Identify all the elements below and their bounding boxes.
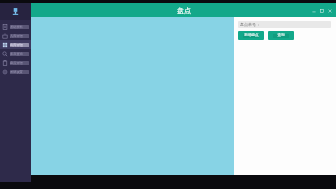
button[interactable]: Menu icon	[0, 31, 31, 40]
staticText: 入库管理	[10, 34, 23, 38]
other: Menu icon	[2, 24, 8, 30]
staticText: 盘点	[177, 6, 191, 15]
staticText: 查询	[277, 33, 285, 38]
other: Menu icon	[2, 42, 8, 48]
button[interactable]: 查询	[268, 31, 294, 40]
button[interactable]: Maximize	[319, 8, 324, 13]
other: Menu icon	[2, 60, 8, 66]
button[interactable]: Minimize	[311, 8, 316, 13]
staticText: 库存查询	[10, 52, 23, 56]
button[interactable]: Menu icon	[0, 58, 31, 67]
button[interactable]: App logo	[0, 3, 31, 20]
button[interactable]: 盘点单号：	[238, 21, 331, 28]
button[interactable]: Menu icon	[0, 40, 31, 49]
staticText: 基础资料	[10, 25, 23, 29]
staticText: 盘点单号：	[240, 22, 260, 27]
button[interactable]: Menu icon	[0, 22, 31, 31]
other: Menu icon	[2, 69, 8, 75]
staticText: 盘点管理	[10, 61, 23, 65]
button[interactable]: Close	[327, 8, 332, 13]
staticText: 出库管理	[10, 43, 23, 47]
other: Menu icon	[2, 51, 8, 57]
staticText: 系统设置	[10, 70, 23, 74]
button[interactable]: Menu icon	[0, 49, 31, 58]
other: Menu icon	[2, 33, 8, 39]
staticText: 新增盘点	[244, 33, 259, 38]
button[interactable]: 新增盘点	[238, 31, 264, 40]
button[interactable]: Menu icon	[0, 67, 31, 76]
